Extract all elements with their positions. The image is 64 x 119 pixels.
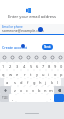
staticText: 8 [48, 64, 51, 69]
button[interactable]: 6 [34, 62, 40, 70]
staticText: g [33, 80, 36, 85]
staticText: d [20, 80, 23, 85]
button[interactable]: 0 [58, 62, 64, 70]
staticText: 9 [54, 64, 57, 69]
staticText: a [6, 80, 9, 85]
staticText: 7 [42, 64, 45, 69]
button[interactable]: e [14, 70, 21, 78]
button[interactable]: y [34, 70, 40, 78]
staticText: l [57, 80, 59, 85]
staticText: c [26, 88, 28, 93]
button[interactable]: Shift [0, 86, 11, 94]
staticText: n [44, 88, 47, 93]
staticText: Email or phone [2, 25, 23, 29]
staticText: 0 [60, 64, 63, 69]
staticText: z [14, 88, 16, 93]
staticText: h [39, 80, 42, 85]
button[interactable]: Keyboard tool [24, 52, 32, 62]
button[interactable]: ?123 [0, 94, 9, 102]
button[interactable]: l [55, 78, 61, 86]
button[interactable]: 3 [14, 62, 21, 70]
staticText: 4 [23, 64, 26, 69]
staticText: . [50, 96, 52, 101]
staticText: 3 [16, 64, 19, 69]
button[interactable]: t [28, 70, 34, 78]
button[interactable]: n [42, 86, 48, 94]
button[interactable]: 9 [52, 62, 58, 70]
button[interactable]: 4 [21, 62, 28, 70]
button[interactable] [0, 24, 64, 34]
button[interactable]: Backspace [54, 86, 64, 94]
button[interactable]: 7 [40, 62, 46, 70]
button[interactable]: c [24, 86, 30, 94]
staticText: t [30, 72, 32, 77]
staticText: m [49, 88, 53, 93]
staticText: f [27, 80, 29, 85]
button[interactable]: Create account [2, 45, 28, 50]
staticText: 5 [30, 64, 33, 69]
button[interactable]: Next [42, 44, 53, 50]
staticText: 2 [9, 64, 12, 69]
button[interactable]: Keyboard tool [0, 52, 8, 62]
button[interactable]: 2 [7, 62, 14, 70]
button[interactable]: o [52, 70, 58, 78]
staticText: b [38, 88, 41, 93]
button[interactable]: f [25, 78, 31, 86]
button[interactable]: g [31, 78, 37, 86]
button[interactable]: w [7, 70, 14, 78]
button[interactable]: m [48, 86, 54, 94]
staticText: 6 [36, 64, 39, 69]
button[interactable]: Selection handle [38, 27, 43, 32]
button[interactable]: 8 [46, 62, 52, 70]
staticText: 1 [2, 64, 5, 69]
button[interactable]: h [37, 78, 43, 86]
button[interactable]: a [4, 78, 11, 86]
staticText: w [9, 72, 13, 77]
button[interactable]: x [18, 86, 24, 94]
staticText: o [54, 72, 57, 77]
button[interactable]: More options [21, 44, 25, 48]
button[interactable]: z [11, 86, 18, 94]
staticText: u [42, 72, 45, 77]
button[interactable]: 5 [28, 62, 34, 70]
staticText: someone@example.com [2, 28, 44, 33]
staticText: i [48, 72, 50, 77]
button[interactable]: Keyboard tool [48, 52, 56, 62]
button[interactable]: s [11, 78, 18, 86]
button[interactable]: Keyboard tool [16, 52, 24, 62]
button[interactable]: k [49, 78, 55, 86]
staticText: p [60, 72, 63, 77]
button[interactable]: b [36, 86, 42, 94]
button[interactable]: . [47, 94, 54, 102]
button[interactable]: q [0, 70, 7, 78]
button[interactable]: Keyboard tool [56, 52, 64, 62]
staticText: k [51, 80, 54, 85]
button[interactable]: j [43, 78, 49, 86]
staticText: y [36, 72, 39, 77]
button[interactable]: i [46, 70, 52, 78]
button[interactable]: 1 [0, 62, 7, 70]
button[interactable]: v [30, 86, 36, 94]
staticText: v [32, 88, 35, 93]
staticText: e [16, 72, 19, 77]
button[interactable]: d [18, 78, 25, 86]
staticText: q [2, 72, 5, 77]
button[interactable]: u [40, 70, 46, 78]
staticText: s [14, 80, 16, 85]
button[interactable]: , [9, 94, 16, 102]
button[interactable]: Keyboard tool [40, 52, 48, 62]
staticText: r [24, 72, 26, 77]
staticText: Enter your email address [0, 14, 64, 20]
button[interactable]: p [58, 70, 64, 78]
button[interactable]: r [21, 70, 28, 78]
staticText: Next [44, 45, 51, 49]
staticText: j [45, 80, 47, 85]
button[interactable]: Keyboard tool [32, 52, 40, 62]
staticText: , [12, 96, 14, 101]
button[interactable]: Keyboard tool [8, 52, 16, 62]
button[interactable]: Next [54, 94, 64, 102]
staticText: x [20, 88, 23, 93]
staticText: ?123 [2, 96, 8, 100]
